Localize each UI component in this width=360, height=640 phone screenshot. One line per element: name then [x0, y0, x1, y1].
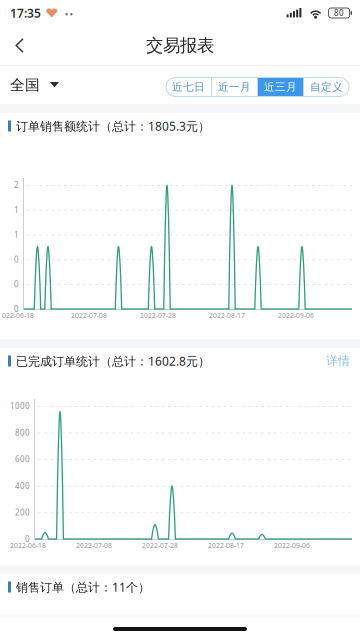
staticText: 0	[14, 279, 19, 289]
staticText: 0	[14, 304, 19, 314]
staticText: 800	[15, 427, 30, 438]
button[interactable]: 近一月	[212, 77, 257, 96]
staticText: 200	[15, 507, 30, 518]
button[interactable]: 详情	[314, 351, 350, 371]
staticText: 400	[15, 480, 30, 491]
staticText: 2022-09-06	[274, 541, 310, 550]
button[interactable]: 近三月	[258, 77, 303, 96]
button[interactable]: 全国	[0, 67, 69, 103]
staticText: 交易报表	[146, 35, 214, 56]
staticText: 80	[334, 8, 344, 18]
button[interactable]: 近七日	[166, 77, 211, 96]
staticText: 近七日	[172, 80, 205, 93]
staticText: 订单销售额统计（总计：1805.3元）	[16, 118, 210, 134]
staticText: 2	[14, 180, 19, 190]
staticText: 近一月	[218, 80, 251, 93]
staticText: 近三月	[264, 80, 297, 93]
button[interactable]: 返回	[0, 26, 38, 65]
staticText: 0	[14, 254, 19, 265]
staticText: 自定义	[310, 80, 343, 93]
staticText: 2022-07-08	[76, 541, 112, 550]
staticText: 1	[14, 229, 19, 240]
staticText: 2022-08-17	[208, 541, 244, 550]
staticText: 2022-06-18	[10, 541, 46, 550]
staticText: 已完成订单统计（总计：1602.8元）	[16, 353, 210, 369]
staticText: 0	[25, 534, 30, 544]
staticText: 2022-07-28	[140, 311, 176, 320]
staticText: 17:35	[10, 5, 41, 21]
staticText: 2022-09-06	[278, 311, 314, 320]
staticText: 销售订单（总计：11个）	[16, 579, 150, 595]
staticText: 全国	[10, 76, 40, 94]
staticText: 1	[14, 204, 19, 215]
staticText: 1000	[10, 401, 30, 411]
staticText: 022-06-18	[2, 311, 34, 320]
staticText: 详情	[326, 354, 350, 368]
staticText: 2022-08-17	[209, 311, 245, 320]
staticText: 600	[15, 454, 30, 464]
button[interactable]: 自定义	[304, 77, 349, 96]
staticText: 2022-07-08	[71, 311, 107, 320]
staticText: 2022-07-28	[142, 541, 178, 550]
